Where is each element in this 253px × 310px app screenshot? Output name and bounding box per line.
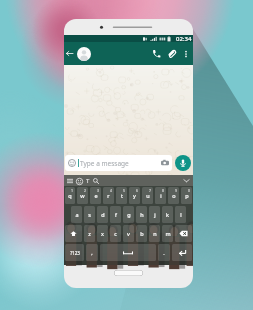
staticText: o [172, 192, 176, 199]
button[interactable]: 6 [129, 187, 140, 204]
staticText: 6 [136, 188, 139, 193]
button[interactable]: v [123, 225, 134, 242]
staticText: f [115, 211, 117, 218]
staticText: 02:34 [176, 35, 192, 42]
button[interactable]: x [97, 225, 108, 242]
staticText: , [91, 249, 93, 256]
staticText: k [166, 211, 169, 218]
button[interactable]: f [110, 206, 121, 223]
button[interactable]: z [84, 225, 95, 242]
button[interactable]: Type a message [65, 155, 172, 171]
button[interactable]: m [162, 225, 173, 242]
staticText: h [140, 211, 144, 218]
button[interactable]: 5 [116, 187, 127, 204]
staticText: z [88, 230, 91, 237]
staticText: e [94, 192, 98, 199]
button[interactable]: Attach [164, 46, 179, 61]
staticText: . [163, 249, 165, 256]
button[interactable]: c [110, 225, 121, 242]
staticText: T [86, 177, 90, 185]
button[interactable]: 3 [90, 187, 101, 204]
staticText: c [114, 230, 117, 237]
button[interactable]: k [162, 206, 173, 223]
staticText: y [133, 192, 136, 199]
staticText: m [165, 230, 171, 237]
button[interactable]: 8 [155, 187, 166, 204]
staticText: p [185, 192, 189, 199]
button[interactable]: 1 [65, 187, 75, 204]
button[interactable]: Back [64, 48, 75, 59]
button[interactable]: j [149, 206, 160, 223]
button[interactable]: 0 [181, 187, 192, 204]
staticText: d [101, 211, 105, 218]
staticText: 1 [71, 188, 74, 193]
staticText: 2 [84, 188, 87, 193]
staticText: b [140, 230, 144, 237]
button[interactable]: b [136, 225, 147, 242]
staticText: i [160, 192, 162, 199]
button[interactable]: d [97, 206, 108, 223]
button[interactable]: Record voice message [175, 155, 191, 171]
staticText: n [153, 230, 157, 237]
button[interactable]: Menu [66, 177, 74, 185]
staticText: w [80, 192, 85, 199]
staticText: a [75, 211, 79, 218]
staticText: v [127, 230, 130, 237]
button[interactable]: Text [84, 177, 92, 185]
button[interactable] [172, 244, 192, 261]
button[interactable]: n [149, 225, 160, 242]
button[interactable]: s [84, 206, 95, 223]
button[interactable]: Hide keyboard [182, 176, 191, 185]
button[interactable]: Emoji [75, 177, 83, 185]
staticText: 9 [175, 188, 178, 193]
button[interactable]: g [123, 206, 134, 223]
staticText: s [88, 211, 91, 218]
button[interactable]: 7 [142, 187, 153, 204]
staticText: r [107, 192, 110, 199]
staticText: t [121, 192, 123, 199]
staticText: g [127, 211, 131, 218]
staticText: x [101, 230, 104, 237]
staticText: 0 [188, 188, 191, 193]
button[interactable]: a [71, 206, 82, 223]
staticText: ?123 [70, 250, 80, 256]
button[interactable]: Voice call [149, 46, 164, 61]
button[interactable]: Search [92, 177, 100, 185]
button[interactable] [100, 244, 156, 261]
button[interactable]: . [158, 244, 170, 261]
staticText: 8 [162, 188, 165, 193]
staticText: 7 [149, 188, 152, 193]
button[interactable]: ?123 [65, 244, 84, 261]
staticText: 4 [110, 188, 113, 193]
button[interactable]: , [86, 244, 98, 261]
staticText: u [146, 192, 150, 199]
button[interactable]: 4 [103, 187, 114, 204]
button[interactable]: l [175, 206, 186, 223]
staticText: 5 [123, 188, 126, 193]
button[interactable]: 2 [77, 187, 88, 204]
button[interactable]: h [136, 206, 147, 223]
button[interactable]: Contact profile [76, 46, 91, 61]
button[interactable] [65, 225, 82, 242]
staticText: 3 [97, 188, 100, 193]
staticText: l [180, 211, 182, 218]
button[interactable]: 9 [168, 187, 179, 204]
staticText: j [154, 211, 156, 218]
button[interactable]: More options [179, 47, 192, 60]
button[interactable] [175, 225, 192, 242]
staticText: Type a message [80, 159, 129, 168]
staticText: q [68, 192, 72, 199]
